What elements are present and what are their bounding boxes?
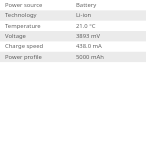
button[interactable]: Voltage [0, 31, 146, 41]
button[interactable]: Technology [0, 10, 146, 20]
staticText: 438.0 mA [76, 42, 102, 50]
staticText: Temperature [5, 22, 41, 30]
staticText: Voltage [5, 32, 26, 40]
staticText: Charge speed [5, 42, 44, 50]
staticText: 5000 mAh [76, 53, 104, 61]
button[interactable]: Temperature [0, 21, 146, 31]
staticText: Li-ion [76, 11, 92, 19]
button[interactable]: Power profile [0, 52, 146, 62]
staticText: Battery [76, 1, 97, 9]
staticText: Power source [5, 1, 43, 9]
staticText: Technology [5, 11, 37, 19]
staticText: Power profile [5, 53, 42, 61]
staticText: 3893 mV [76, 32, 101, 40]
button[interactable]: Power source [0, 0, 146, 10]
staticText: 21.0 °C [76, 22, 96, 30]
button[interactable]: Charge speed [0, 41, 146, 51]
